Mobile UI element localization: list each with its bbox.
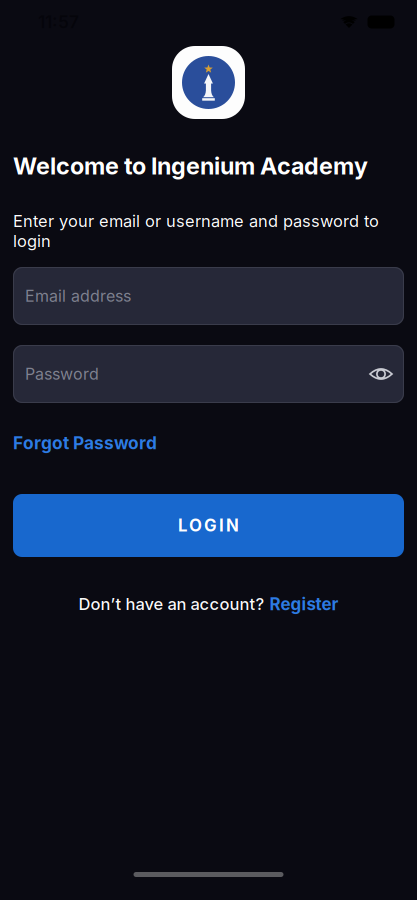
button[interactable]: Register: [269, 594, 338, 614]
staticText: Enter your email or username and passwor…: [13, 211, 379, 251]
button[interactable]: Forgot Password: [13, 435, 157, 456]
button[interactable]: Show password: [369, 362, 393, 386]
staticText: Forgot Password: [13, 432, 157, 453]
staticText: Password: [25, 364, 99, 384]
staticText: Welcome to Ingenium Academy: [13, 152, 368, 180]
staticText: LOGIN: [178, 515, 239, 536]
button[interactable]: LOGIN: [13, 494, 404, 557]
staticText: Register: [269, 594, 338, 614]
staticText: Don’t have an account?: [78, 594, 264, 614]
button[interactable]: Password: [13, 345, 404, 403]
button[interactable]: Email address: [13, 267, 404, 325]
staticText: Email address: [25, 286, 131, 306]
